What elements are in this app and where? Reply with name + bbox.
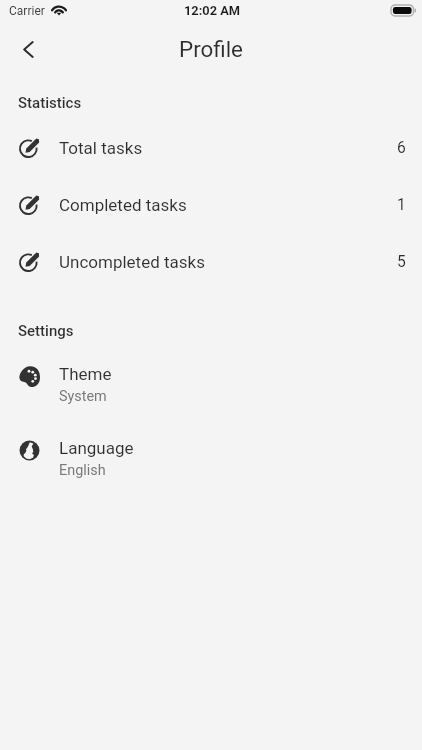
staticText: Total tasks [59,138,143,158]
staticText: 6 [397,139,406,157]
staticText: Uncompleted tasks [59,252,205,272]
staticText: System [59,388,107,405]
staticText: Language [59,438,134,458]
staticText: Profile [179,36,243,62]
button[interactable]: Theme [0,364,422,417]
staticText: English [59,462,106,479]
staticText: 1 [397,196,406,214]
staticText: 5 [397,253,406,271]
button[interactable]: Language [0,438,422,491]
button[interactable]: Uncompleted tasks [0,233,422,290]
staticText: Completed tasks [59,195,187,215]
staticText: Carrier [9,4,45,18]
button[interactable]: Total tasks [0,119,422,176]
staticText: 12:02 AM [184,3,240,18]
staticText: Statistics [18,94,82,112]
staticText: Theme [59,364,112,384]
button[interactable]: Completed tasks [0,176,422,233]
button[interactable]: Back [7,28,51,72]
staticText: Settings [18,322,74,340]
